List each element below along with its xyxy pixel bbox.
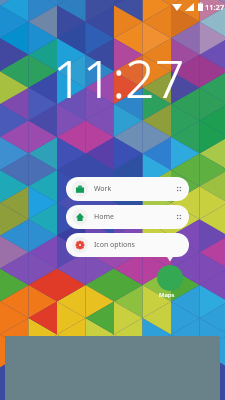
button[interactable]: Work [66, 177, 189, 201]
staticText: Home [94, 212, 114, 222]
staticText: 11:27 [53, 42, 185, 113]
button[interactable]: Home [66, 205, 189, 229]
staticText: 11:27 [205, 2, 225, 12]
staticText: Maps [159, 291, 175, 299]
staticText: Icon options [94, 240, 135, 250]
staticText: Work [94, 184, 112, 194]
button[interactable]: Icon options [66, 233, 189, 257]
